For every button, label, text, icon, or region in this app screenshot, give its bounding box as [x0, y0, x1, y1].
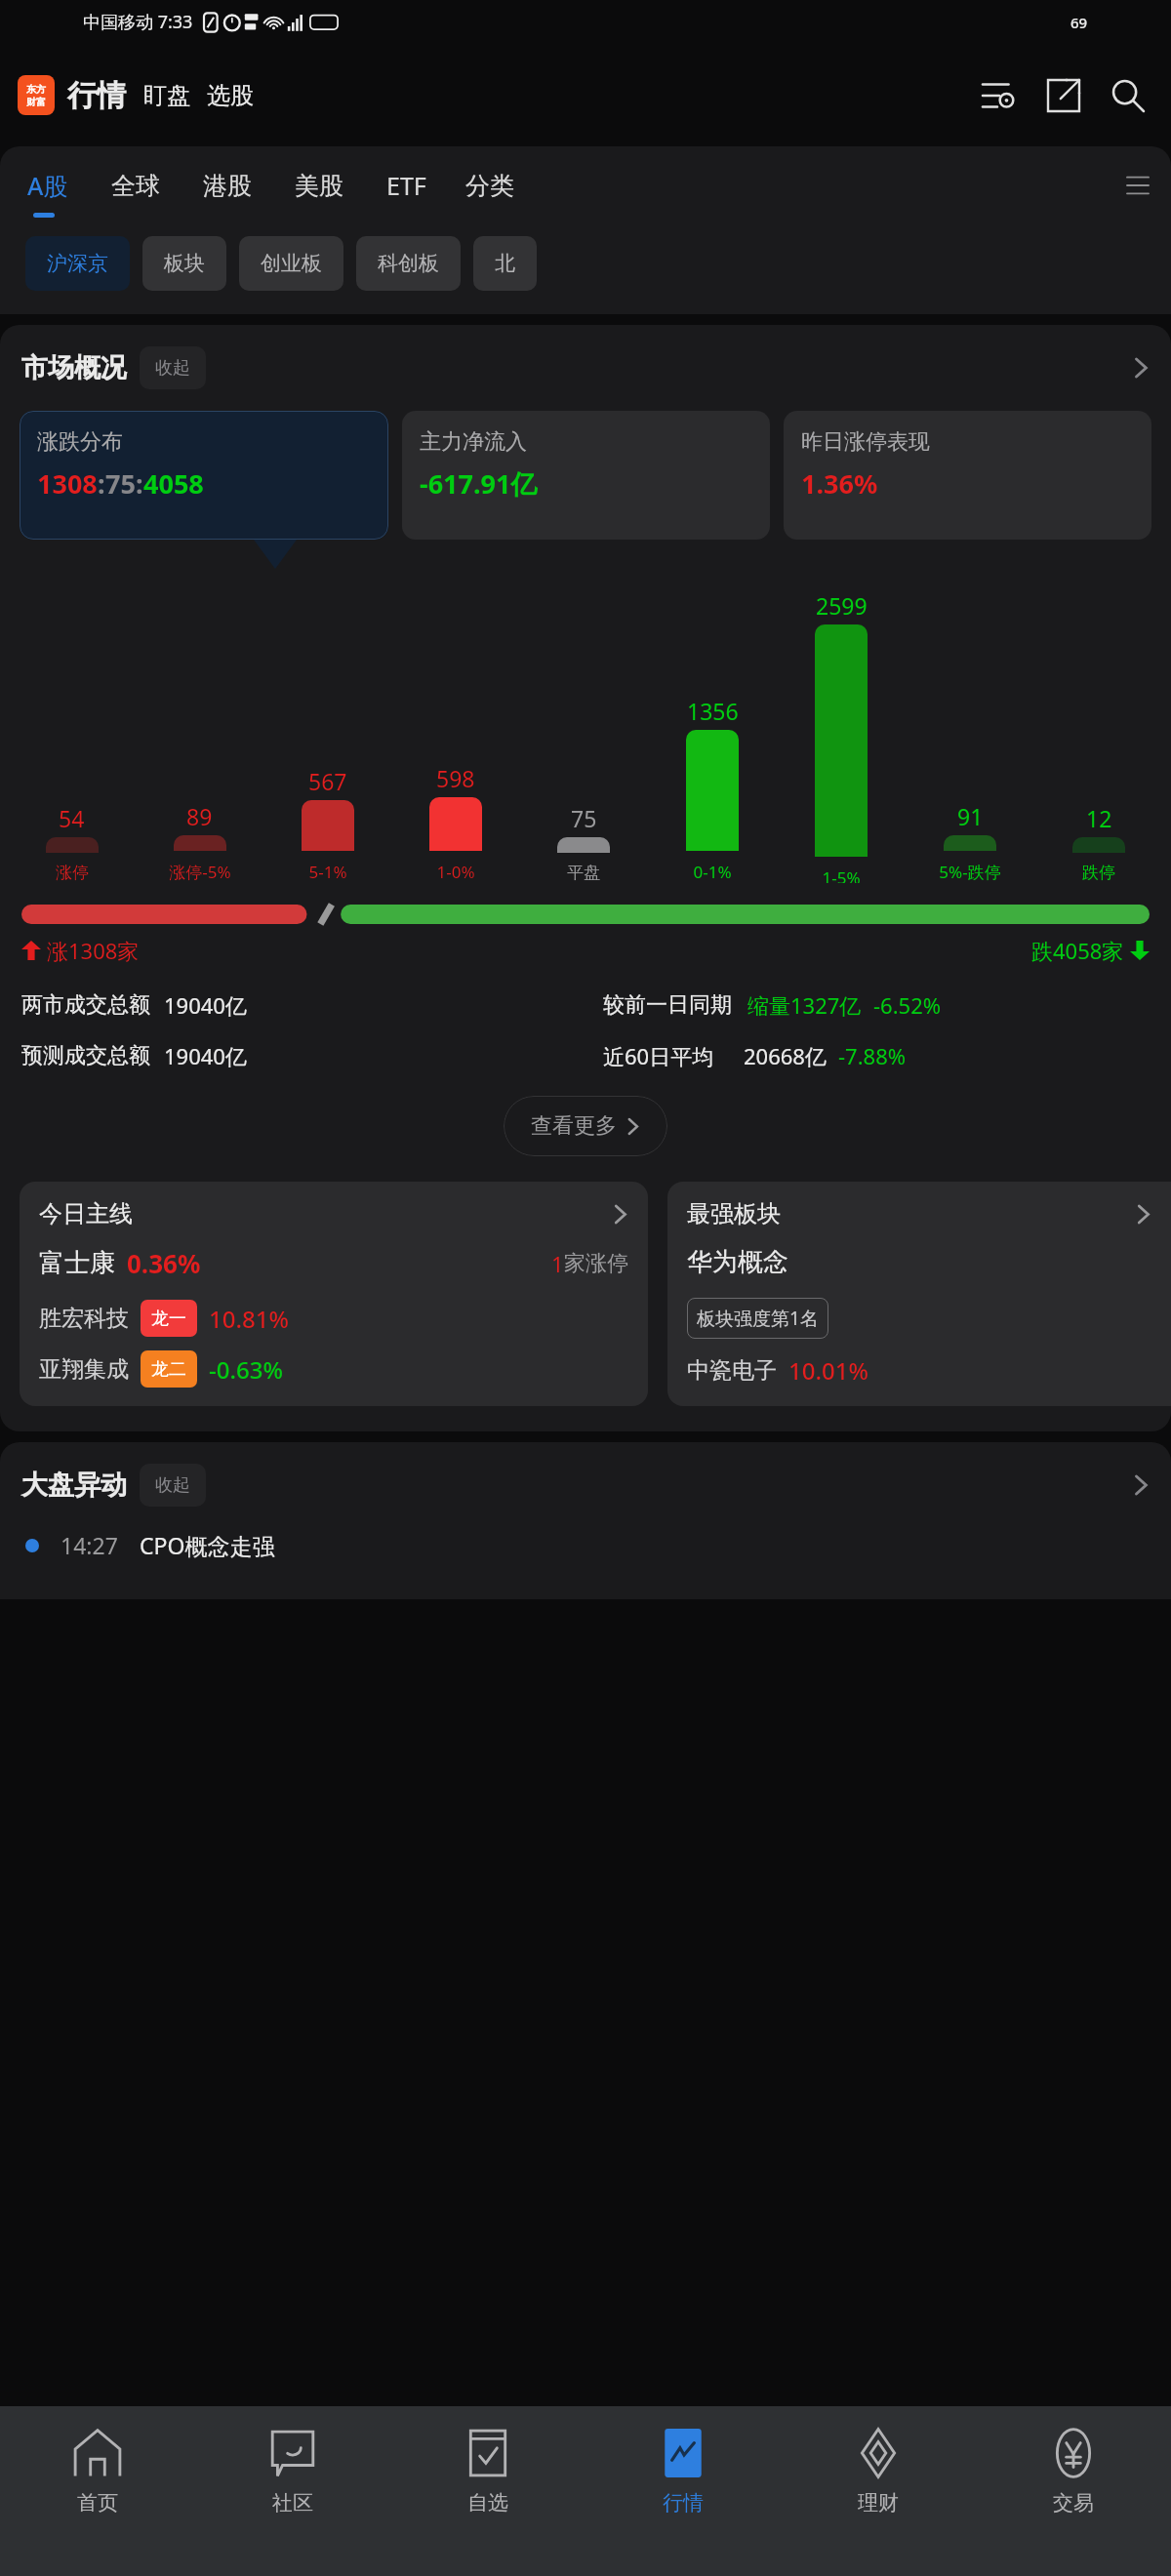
staticText: 预测成交总额: [21, 1042, 150, 1069]
button[interactable]: 最强板块: [667, 1182, 1171, 1406]
button[interactable]: Share: [1038, 70, 1089, 121]
staticText: 75: [105, 465, 136, 502]
button[interactable]: 盯盘: [143, 81, 190, 110]
button[interactable]: 分类: [465, 171, 514, 201]
staticText: 69: [1070, 13, 1088, 32]
staticText: 华为概念: [687, 1246, 788, 1278]
staticText: 收起: [155, 357, 190, 380]
staticText: 收起: [155, 1474, 190, 1497]
staticText: 龙一: [151, 1308, 186, 1330]
staticText: 科创板: [378, 251, 439, 276]
staticText: 10.01%: [788, 1354, 868, 1387]
button[interactable]: 创业板: [239, 236, 343, 291]
staticText: 涨停-5%: [169, 861, 231, 883]
staticText: 567: [308, 766, 347, 796]
button[interactable]: 昨日涨停表现: [784, 411, 1151, 540]
staticText: 0.36%: [127, 1246, 201, 1280]
button[interactable]: 今日主线: [20, 1182, 648, 1406]
staticText: 缩量1327亿: [747, 990, 862, 1020]
button[interactable]: 自选: [390, 2406, 585, 2576]
button[interactable]: 查看更多: [504, 1096, 667, 1156]
staticText: 14:27: [61, 1530, 118, 1560]
staticText: 港股: [203, 171, 252, 201]
button[interactable]: More tabs: [1116, 164, 1159, 207]
staticText: 20668亿: [744, 1041, 827, 1070]
button[interactable]: 北: [473, 236, 537, 291]
button[interactable]: 沪深京: [25, 236, 130, 291]
staticText: 75: [571, 803, 597, 833]
button[interactable]: ETF: [386, 169, 426, 202]
button[interactable]: 理财: [781, 2406, 976, 2576]
staticText: 19040亿: [164, 990, 247, 1020]
staticText: 创业板: [261, 251, 322, 276]
staticText: 平盘: [567, 863, 600, 883]
staticText: 主力净流入: [420, 428, 527, 456]
staticText: :: [136, 465, 143, 502]
staticText: 财富: [26, 96, 46, 108]
staticText: :: [98, 465, 105, 502]
staticText: 北: [495, 251, 515, 276]
button[interactable]: 美股: [295, 171, 343, 201]
staticText: 大盘异动: [21, 1469, 127, 1502]
button[interactable]: Sort settings: [974, 70, 1025, 121]
staticText: 1-0%: [436, 861, 475, 883]
staticText: -6.52%: [873, 990, 942, 1020]
button[interactable]: 行情: [67, 77, 126, 114]
staticText: 4058: [143, 465, 204, 502]
button[interactable]: 市场概况: [0, 346, 1171, 389]
staticText: 0-1%: [693, 861, 732, 883]
button[interactable]: A股: [27, 169, 68, 202]
staticText: 涨1308家: [47, 936, 140, 965]
staticText: 行情: [663, 2490, 704, 2516]
staticText: 家涨停: [564, 1250, 628, 1277]
staticText: A股: [27, 169, 68, 202]
staticText: 涨停: [56, 863, 89, 883]
staticText: 昨日涨停表现: [801, 428, 930, 456]
staticText: 1-5%: [822, 866, 861, 883]
staticText: 龙二: [151, 1358, 186, 1381]
staticText: CPO概念走强: [140, 1530, 275, 1560]
staticText: 1356: [687, 696, 739, 726]
staticText: 社区: [272, 2490, 313, 2516]
button[interactable]: 大盘异动: [0, 1464, 1171, 1507]
button[interactable]: 科创板: [356, 236, 461, 291]
button[interactable]: 全球: [111, 171, 160, 201]
button[interactable]: Search: [1103, 70, 1153, 121]
staticText: 板块: [164, 251, 205, 276]
staticText: 54: [59, 803, 85, 833]
staticText: 12: [1086, 803, 1112, 833]
staticText: 91: [957, 801, 984, 831]
staticText: 理财: [858, 2490, 899, 2516]
button[interactable]: 港股: [203, 171, 252, 201]
staticText: 查看更多: [531, 1112, 617, 1140]
staticText: 分类: [465, 171, 514, 201]
staticText: 交易: [1053, 2490, 1094, 2516]
staticText: 89: [186, 801, 213, 831]
staticText: 1: [551, 1249, 564, 1278]
staticText: 较前一日同期: [603, 991, 732, 1019]
staticText: 中国移动 7:33: [83, 10, 193, 34]
staticText: 美股: [295, 171, 343, 201]
button[interactable]: 首页: [0, 2406, 195, 2576]
staticText: 今日主线: [39, 1199, 133, 1228]
button[interactable]: 主力净流入: [402, 411, 770, 540]
button[interactable]: 交易: [976, 2406, 1171, 2576]
button[interactable]: 板块: [142, 236, 226, 291]
staticText: 自选: [467, 2490, 508, 2516]
button[interactable]: 14:27: [0, 1530, 1171, 1560]
staticText: 两市成交总额: [21, 991, 150, 1019]
staticText: 富士康: [39, 1247, 115, 1279]
button[interactable]: 行情: [585, 2406, 781, 2576]
button[interactable]: 收起: [140, 1464, 206, 1507]
button[interactable]: 社区: [195, 2406, 390, 2576]
staticText: 沪深京: [47, 251, 108, 276]
button[interactable]: 涨跌分布: [20, 411, 388, 540]
button[interactable]: 选股: [207, 81, 254, 110]
staticText: 跌4058家: [1031, 936, 1124, 965]
button[interactable]: 东方: [18, 75, 55, 115]
staticText: 全球: [111, 171, 160, 201]
staticText: ETF: [386, 169, 426, 202]
button[interactable]: 收起: [140, 346, 206, 389]
staticText: 1.36%: [801, 465, 878, 502]
staticText: 东方: [26, 83, 46, 96]
